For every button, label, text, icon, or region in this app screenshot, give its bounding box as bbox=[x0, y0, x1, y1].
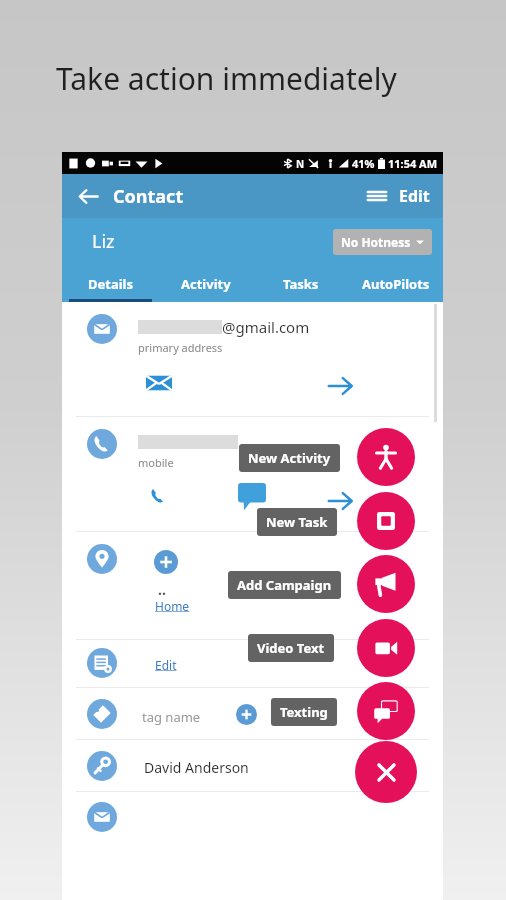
button[interactable]: Send email bbox=[146, 370, 172, 396]
button[interactable]: No Hotness bbox=[333, 229, 432, 255]
staticText: primary address bbox=[138, 340, 223, 355]
staticText: Home bbox=[155, 598, 190, 614]
button[interactable]: Home bbox=[155, 598, 190, 614]
staticText: Activity bbox=[181, 275, 231, 293]
staticText: Edit bbox=[399, 185, 430, 207]
staticText: Edit bbox=[155, 657, 177, 673]
button[interactable]: David Anderson bbox=[62, 740, 443, 792]
staticText: Add Campaign bbox=[237, 576, 332, 594]
staticText: @gmail.com bbox=[222, 317, 310, 337]
button[interactable]: AutoPilots bbox=[348, 265, 443, 302]
button[interactable]: Go bbox=[326, 372, 354, 400]
button[interactable]: Add Campaign bbox=[357, 555, 415, 613]
button[interactable]: New Activity bbox=[357, 428, 415, 486]
staticText: No Hotness bbox=[341, 234, 411, 250]
button[interactable]: Edit bbox=[397, 180, 432, 212]
button[interactable]: Message bbox=[238, 483, 266, 511]
staticText: 41% bbox=[352, 156, 375, 171]
button[interactable]: Call bbox=[145, 483, 171, 509]
staticText: mobile bbox=[138, 455, 174, 470]
button[interactable]: Menu bbox=[362, 181, 392, 211]
button[interactable]: Texting bbox=[357, 682, 415, 740]
button[interactable]: New Task bbox=[357, 492, 415, 550]
staticText: .. bbox=[158, 580, 166, 599]
staticText: Texting bbox=[280, 703, 328, 721]
button[interactable]: Close bbox=[355, 741, 417, 803]
button[interactable]: Add tag bbox=[236, 704, 257, 725]
button[interactable]: Tasks bbox=[253, 265, 348, 302]
staticText: Liz bbox=[92, 229, 115, 254]
staticText: New Task bbox=[266, 513, 328, 531]
staticText: Contact bbox=[113, 184, 184, 209]
staticText: 11:54 AM bbox=[388, 156, 438, 171]
staticText: tag name bbox=[142, 708, 201, 726]
staticText: David Anderson bbox=[144, 758, 249, 777]
button[interactable]: Go bbox=[326, 487, 354, 515]
button[interactable]: @gmail.com bbox=[62, 302, 443, 417]
button[interactable]: Add Campaign bbox=[228, 571, 341, 599]
button[interactable]: mobile bbox=[62, 417, 443, 532]
staticText: N bbox=[296, 157, 305, 171]
button[interactable]: Activity bbox=[158, 265, 253, 302]
button[interactable]: New Activity bbox=[239, 444, 340, 472]
button[interactable]: Edit bbox=[155, 657, 177, 673]
button[interactable]: Details bbox=[62, 265, 158, 302]
button[interactable]: Back bbox=[73, 181, 103, 211]
button[interactable]: Video Text bbox=[248, 634, 334, 662]
staticText: Tasks bbox=[283, 275, 319, 293]
button[interactable]: Edit bbox=[62, 640, 443, 688]
staticText: AutoPilots bbox=[362, 275, 430, 293]
staticText: Take action immediately bbox=[56, 58, 397, 99]
button[interactable]: Add address bbox=[62, 532, 443, 640]
staticText: Video Text bbox=[257, 639, 325, 657]
button[interactable]: Texting bbox=[271, 698, 337, 726]
staticText: New Activity bbox=[248, 449, 331, 467]
button[interactable]: Video Text bbox=[357, 619, 415, 677]
button[interactable]: New Task bbox=[257, 508, 337, 536]
button[interactable]: tag name bbox=[62, 688, 443, 740]
staticText: Details bbox=[88, 275, 133, 293]
button[interactable]: Add address bbox=[154, 550, 178, 574]
